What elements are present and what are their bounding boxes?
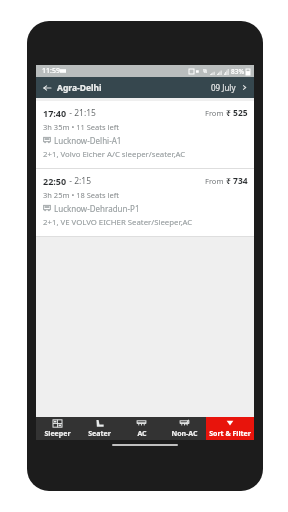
- staticText: From: [205, 176, 226, 186]
- staticText: AC: [137, 429, 147, 439]
- staticText: Agra-Delhi: [57, 82, 102, 94]
- button[interactable]: Back: [36, 77, 57, 98]
- staticText: 2+1, VE VOLVO EICHER Seater/Sleeper,AC: [43, 217, 193, 228]
- staticText: Lucknow-Dehradun-P1: [54, 203, 140, 214]
- staticText: Lucknow-Delhi-A1: [54, 135, 122, 146]
- staticText: 3h 25m • 18 Seats left: [43, 190, 119, 200]
- staticText: - 2:15: [67, 175, 92, 187]
- staticText: %: [203, 68, 208, 75]
- staticText: Non-AC: [171, 429, 198, 439]
- button[interactable]: AC: [120, 417, 163, 440]
- staticText: From: [205, 108, 226, 118]
- button[interactable]: 09 July: [205, 77, 254, 98]
- staticText: 3h 35m • 11 Seats left: [43, 122, 119, 132]
- staticText: 2+1, Volvo Eicher A/C sleeper/seater,AC: [43, 149, 186, 160]
- staticText: - 21:15: [67, 107, 96, 119]
- button[interactable]: Sleeper: [36, 417, 78, 440]
- staticText: Sleeper: [44, 429, 71, 439]
- button[interactable]: Sort & Filter: [206, 417, 254, 440]
- staticText: Seater: [88, 429, 111, 439]
- staticText: ₹ 525: [226, 107, 248, 119]
- button[interactable]: 22:50: [36, 169, 254, 236]
- button[interactable]: Seater: [78, 417, 120, 440]
- staticText: 22:50: [43, 175, 67, 187]
- button[interactable]: Non-AC: [163, 417, 206, 440]
- staticText: 11:59: [42, 66, 60, 76]
- staticText: 17:40: [43, 107, 67, 119]
- staticText: 83%: [231, 67, 244, 76]
- button[interactable]: 17:40: [36, 101, 254, 168]
- staticText: ₹ 734: [226, 175, 248, 187]
- staticText: Sort & Filter: [209, 429, 251, 439]
- staticText: 09 July: [211, 82, 236, 93]
